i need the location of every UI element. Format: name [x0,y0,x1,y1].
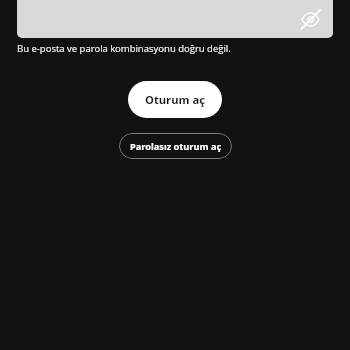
staticText: Bu e-posta ve parola kombinasyonu doğru … [17,42,231,55]
staticText: Parolasız oturum aç [130,140,222,153]
button[interactable]: Parolasız oturum aç [119,133,232,159]
button[interactable]: Hide password [17,0,333,38]
button[interactable]: Oturum aç [128,81,222,118]
staticText: Oturum aç [145,92,205,107]
button[interactable]: Hide password [296,5,324,33]
